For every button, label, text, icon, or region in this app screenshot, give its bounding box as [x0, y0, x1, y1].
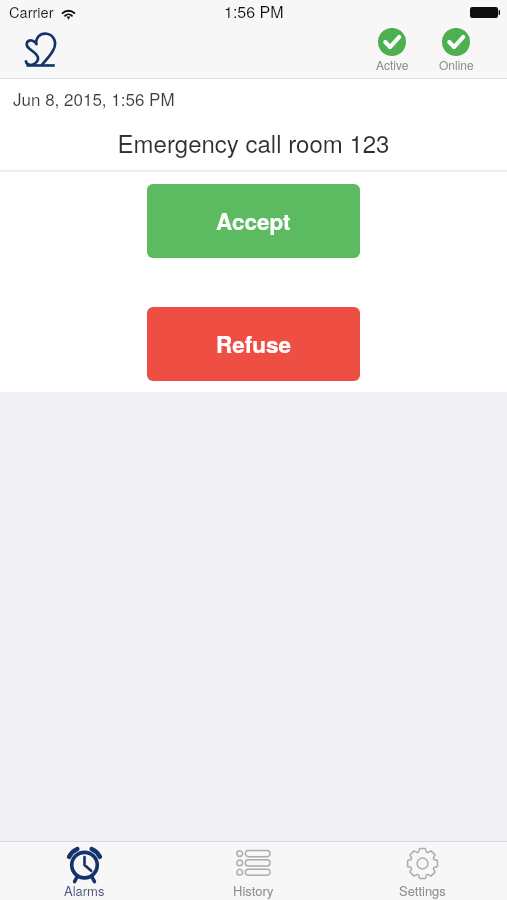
button[interactable]: Settings [338, 842, 507, 900]
staticText: History [233, 881, 274, 900]
button[interactable]: Online [436, 28, 476, 73]
staticText: Alarms [64, 881, 105, 900]
staticText: Active [376, 56, 409, 73]
button[interactable]: App logo [25, 33, 56, 67]
staticText: Accept [216, 205, 291, 237]
staticText: Online [439, 56, 474, 73]
button[interactable]: Alarms [0, 842, 169, 900]
staticText: Settings [399, 881, 446, 900]
button[interactable]: Refuse [147, 307, 360, 381]
staticText: Carrier [9, 1, 54, 22]
staticText: Jun 8, 2015, 1:56 PM [13, 86, 175, 110]
staticText: 1:56 PM [224, 0, 284, 23]
button[interactable]: Active [372, 28, 412, 73]
button[interactable]: Accept [147, 184, 360, 258]
button[interactable]: History [169, 842, 338, 900]
staticText: Emergency call room 123 [0, 125, 507, 159]
staticText: Refuse [216, 328, 292, 360]
